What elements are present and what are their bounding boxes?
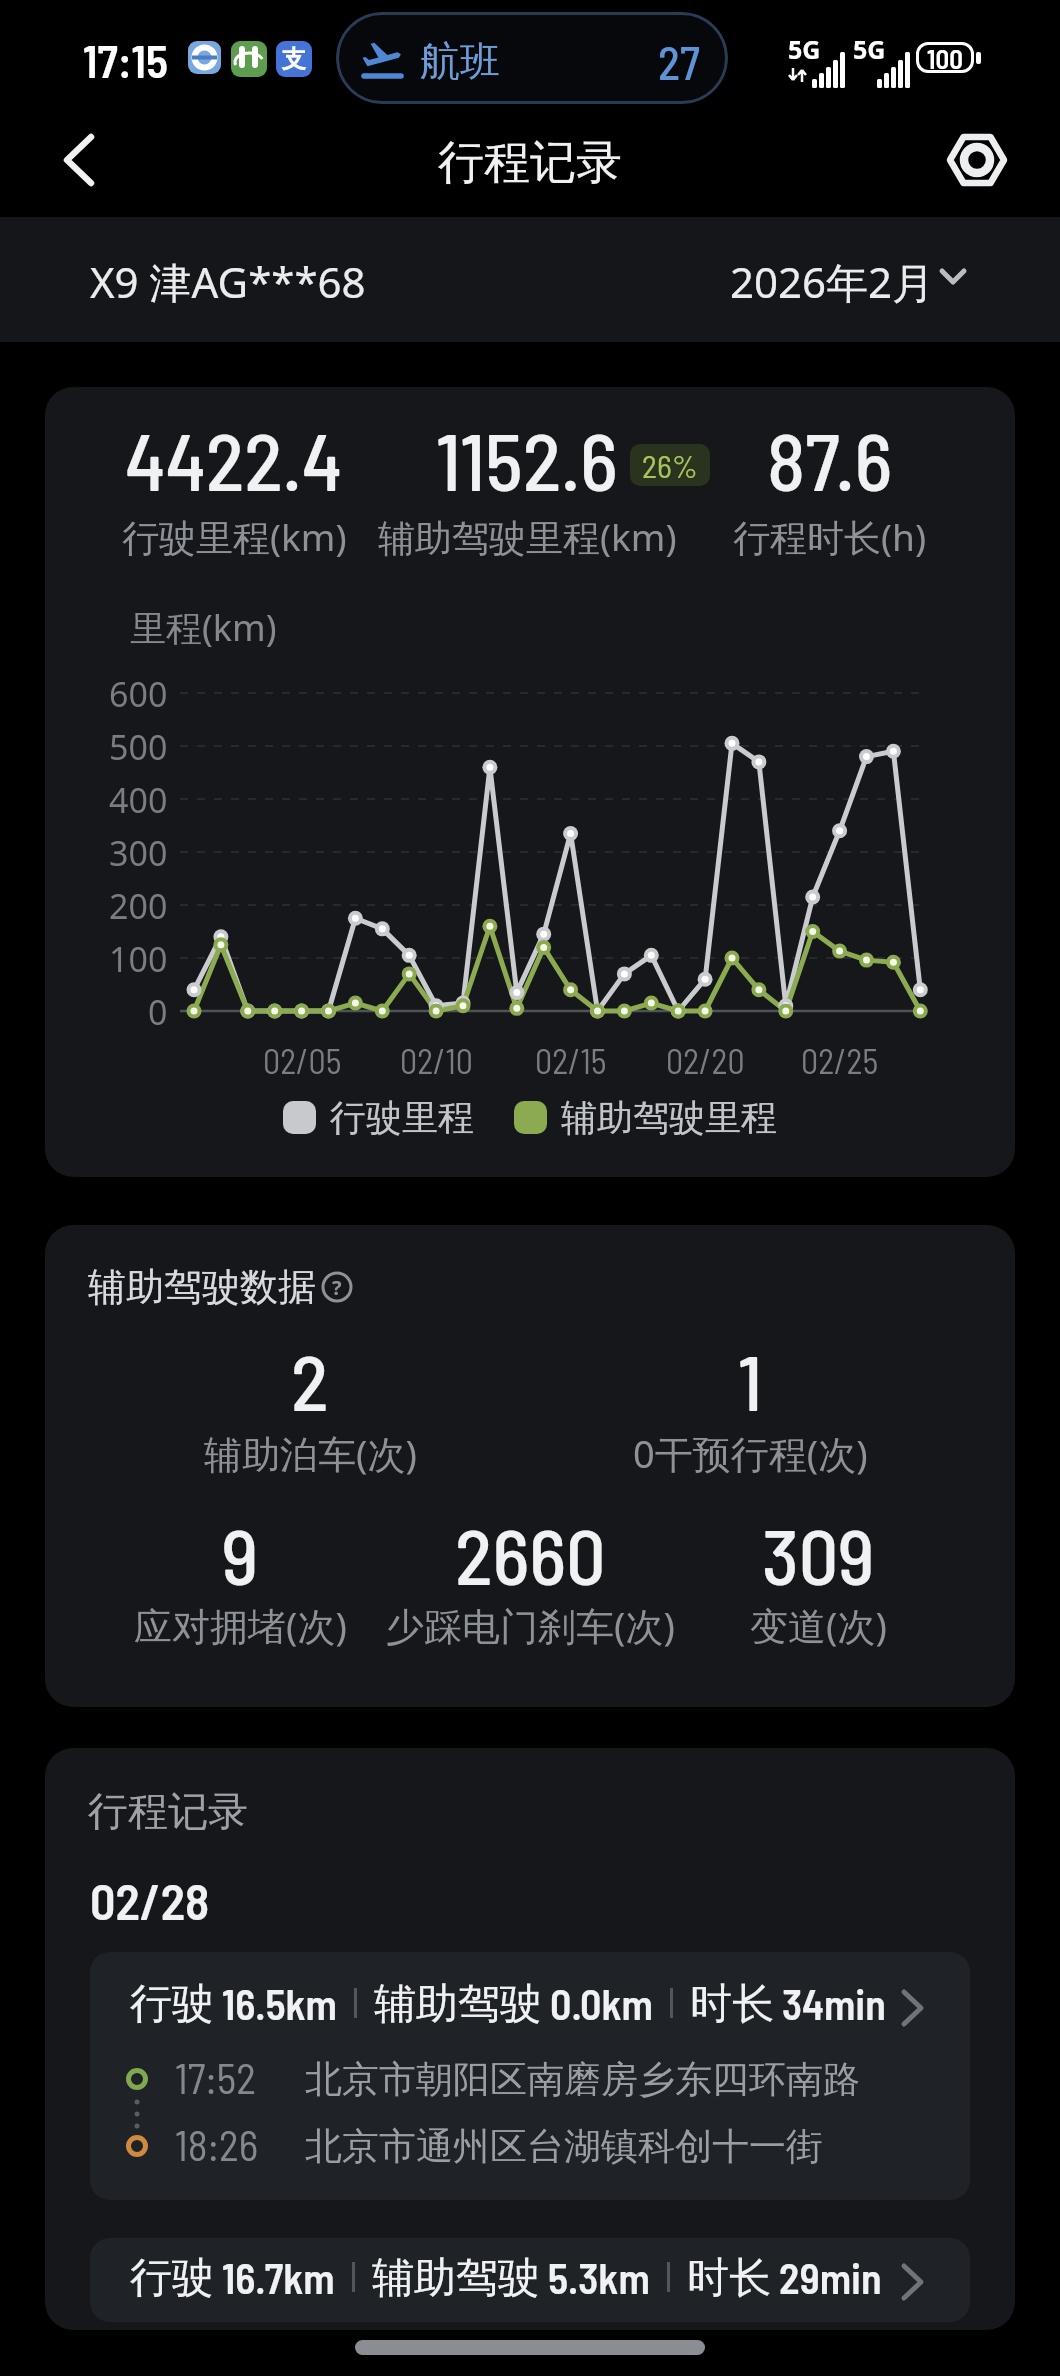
staticText: 600	[109, 671, 168, 717]
staticText: 400	[109, 777, 168, 823]
staticText: 18:26	[175, 2119, 259, 2169]
staticText: 辅助驾驶	[372, 2252, 540, 2302]
staticText: 4422.4	[125, 411, 343, 507]
staticText: 辅助驾驶里程	[561, 1095, 777, 1140]
button[interactable]	[58, 134, 100, 186]
staticText: 34min	[782, 1978, 886, 2028]
button[interactable]: X9 津AG***68	[0, 217, 1060, 342]
staticText: 北京市通州区台湖镇科创十一街	[305, 2123, 823, 2170]
staticText: 500	[109, 724, 168, 770]
staticText: 5.3km	[548, 2252, 650, 2302]
staticText: 支	[282, 44, 306, 74]
staticText: 02/20	[666, 1040, 745, 1081]
staticText: 5G	[788, 32, 821, 66]
staticText: 0.0km	[550, 1978, 653, 2028]
staticText: 行驶	[130, 1978, 214, 2028]
button[interactable]: 航班	[336, 12, 728, 104]
button[interactable]: 行驶	[90, 2238, 970, 2322]
button[interactable]	[948, 132, 1006, 188]
staticText: X9 津AG***68	[90, 253, 366, 310]
staticText: 0	[148, 989, 168, 1035]
staticText: 02/15	[535, 1040, 607, 1081]
staticText: 17:15	[83, 32, 169, 87]
staticText: 时长	[690, 1978, 774, 2028]
staticText: 北京市朝阳区南磨房乡东四环南路	[305, 2056, 860, 2103]
staticText: 时长	[687, 2252, 771, 2302]
staticText: 行程记录	[438, 134, 622, 192]
staticText: 航班	[420, 36, 500, 86]
staticText: 17:52	[175, 2052, 256, 2102]
staticText: 行程记录	[88, 1786, 248, 1836]
staticText: 里程(km)	[130, 603, 277, 652]
staticText: 16.5km	[222, 1978, 337, 2028]
staticText: 26%	[642, 446, 698, 484]
staticText: 2660	[455, 1507, 606, 1601]
staticText: 2	[291, 1333, 329, 1427]
staticText: 02/05	[263, 1040, 342, 1081]
staticText: 辅助驾驶里程(km)	[378, 511, 677, 562]
staticText: 02/28	[90, 1870, 210, 1930]
staticText: 辅助驾驶	[374, 1978, 542, 2028]
staticText: 100	[927, 42, 963, 73]
staticText: 2026年2月	[730, 253, 935, 310]
staticText: 行驶里程	[330, 1095, 474, 1140]
staticText: 200	[109, 883, 168, 929]
staticText: 1	[738, 1333, 763, 1427]
staticText: 行程时长(h)	[733, 511, 927, 562]
staticText: 87.6	[767, 411, 893, 507]
staticText: 应对拥堵(次)	[134, 1599, 347, 1651]
staticText: 少踩电门刹车(次)	[386, 1599, 675, 1651]
staticText: 300	[109, 830, 168, 876]
staticText: ?	[332, 1274, 342, 1301]
staticText: 29min	[779, 2252, 882, 2302]
staticText: 02/25	[801, 1040, 879, 1081]
staticText: 16.7km	[222, 2252, 335, 2302]
staticText: 100	[109, 936, 168, 982]
staticText: 1152.6	[436, 411, 618, 507]
button[interactable]: 行驶	[90, 1952, 970, 2200]
staticText: 02/10	[400, 1040, 473, 1081]
staticText: 5G	[853, 32, 886, 66]
staticText: 行驶	[130, 2252, 214, 2302]
staticText: 0干预行程(次)	[633, 1427, 868, 1479]
staticText: 309	[762, 1507, 875, 1601]
staticText: 变道(次)	[750, 1599, 887, 1651]
staticText: 27	[658, 34, 700, 89]
staticText: 行驶里程(km)	[122, 511, 347, 562]
button[interactable]: ?	[321, 1271, 353, 1303]
staticText: 辅助驾驶数据	[88, 1263, 316, 1311]
staticText: 9	[222, 1507, 259, 1601]
staticText: 辅助泊车(次)	[204, 1427, 417, 1479]
